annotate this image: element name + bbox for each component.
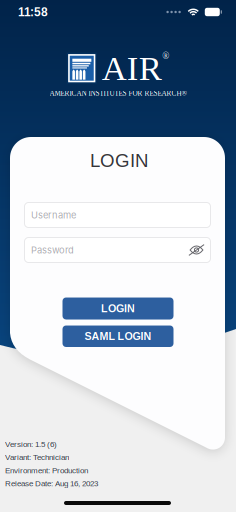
staticText: Version: 1.5 (6) (5, 440, 57, 448)
staticText: Environment: Production (5, 466, 88, 475)
staticText: Variant: Technician (5, 453, 69, 462)
staticText: Password (31, 244, 74, 256)
staticText: SAML LOGIN (84, 330, 151, 342)
button[interactable]: Show password (187, 243, 205, 257)
staticText: ® (162, 51, 169, 61)
button[interactable]: SAML LOGIN (62, 325, 173, 347)
staticText: LOGIN (101, 302, 135, 314)
staticText: LOGIN (90, 150, 148, 171)
staticText: Release Date: Aug 16, 2023 (5, 479, 98, 488)
staticText: 11:58 (18, 5, 48, 19)
staticText: AMERICAN INSTITUTES FOR RESEARCH® (49, 89, 186, 97)
staticText: Username (31, 209, 76, 221)
button[interactable]: LOGIN (62, 297, 173, 319)
staticText: AIR (102, 49, 162, 87)
